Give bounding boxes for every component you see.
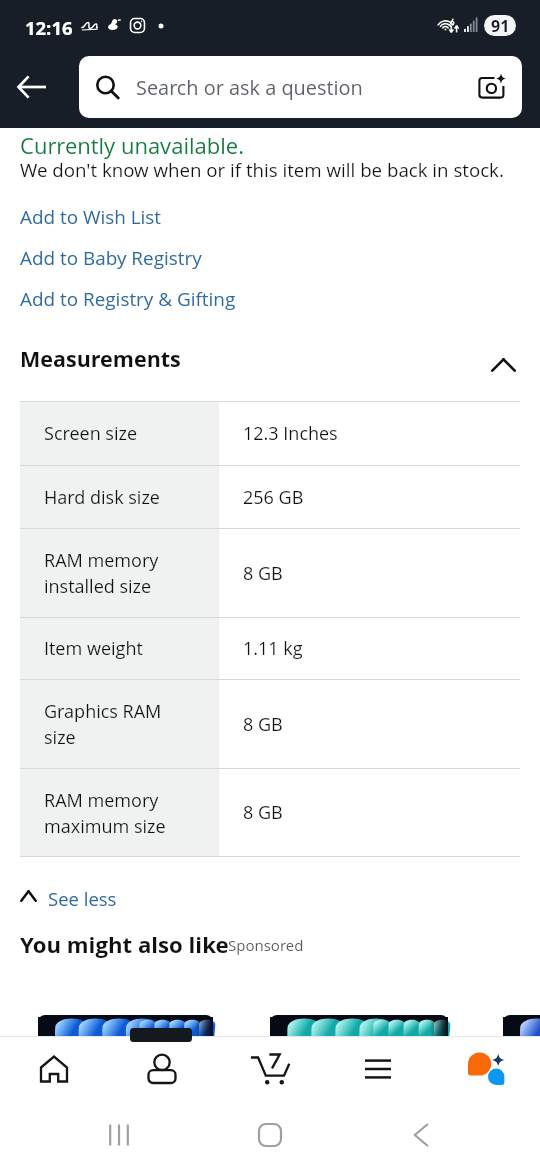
button[interactable]: Cart, 7 items <box>216 1037 324 1100</box>
staticText: RAM memory installed size <box>44 548 159 598</box>
staticText: Graphics RAM size <box>44 699 162 749</box>
button[interactable]: Add to Registry & Gifting <box>0 282 540 316</box>
staticText: Currently unavailable. <box>20 130 244 160</box>
staticText: Add to Wish List <box>20 204 162 230</box>
staticText: 256 GB <box>243 485 304 510</box>
staticText: 8 GB <box>243 561 283 586</box>
staticText: 1.11 kg <box>243 636 303 661</box>
button[interactable]: Search or ask a question <box>79 56 522 118</box>
staticText: You might also like <box>20 929 229 959</box>
button[interactable] <box>270 1012 448 1036</box>
staticText: Add to Registry & Gifting <box>20 286 236 312</box>
staticText: RAM memory maximum size <box>44 788 166 838</box>
button[interactable]: Home <box>230 1100 310 1170</box>
button[interactable]: Menu <box>324 1037 432 1100</box>
staticText: We don't know when or if this item will … <box>20 157 504 182</box>
button[interactable]: Measurements <box>0 337 540 379</box>
staticText: 12.3 Inches <box>243 421 338 446</box>
staticText: Screen size <box>44 421 138 446</box>
staticText: Item weight <box>44 636 143 661</box>
staticText: Add to Baby Registry <box>20 245 202 271</box>
staticText: 91 <box>491 15 510 36</box>
button[interactable]: Add to Wish List <box>0 200 540 234</box>
button[interactable]: Back <box>381 1100 461 1170</box>
staticText: Measurements <box>20 344 181 373</box>
button[interactable]: Recent apps <box>79 1100 159 1170</box>
button[interactable]: Your account <box>108 1037 216 1100</box>
staticText: Sponsored <box>228 935 304 955</box>
staticText: 12:16 <box>25 15 73 40</box>
button[interactable]: Home <box>0 1037 108 1100</box>
staticText: Search or ask a question <box>136 74 363 101</box>
button[interactable]: Add to Baby Registry <box>0 241 540 275</box>
staticText: 8 GB <box>243 712 283 737</box>
button[interactable]: Search with camera <box>466 56 518 118</box>
staticText: See less <box>48 886 117 911</box>
button[interactable]: Rufus assistant <box>432 1037 540 1100</box>
button[interactable] <box>503 1012 540 1036</box>
button[interactable]: See less <box>14 880 124 914</box>
staticText: Hard disk size <box>44 485 160 510</box>
button[interactable]: Back <box>3 56 59 118</box>
button[interactable] <box>38 1012 213 1036</box>
staticText: 8 GB <box>243 800 283 825</box>
